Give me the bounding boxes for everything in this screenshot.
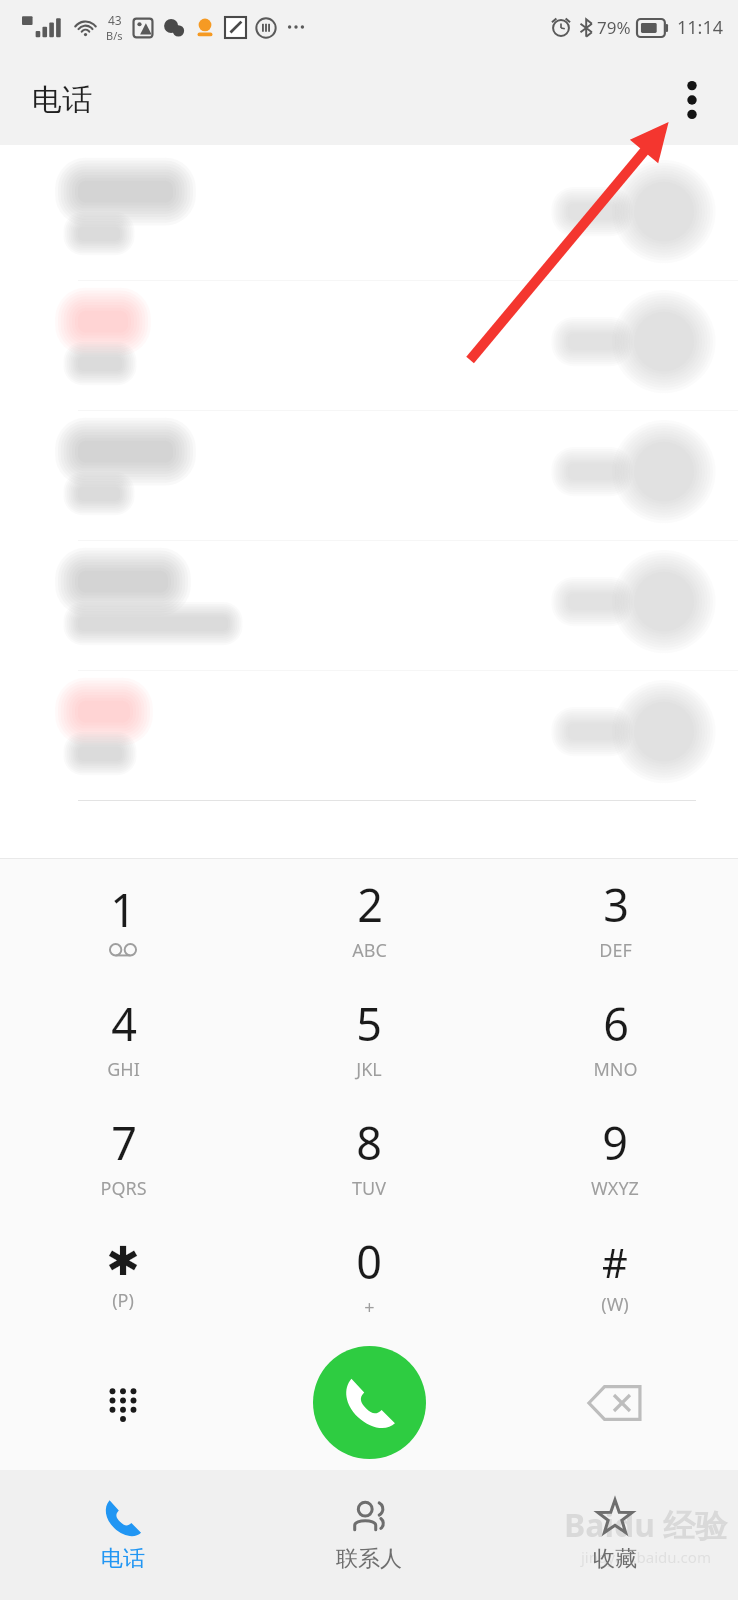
button[interactable]: 9 <box>492 1097 738 1216</box>
button[interactable] <box>0 281 738 410</box>
button[interactable]: 2 <box>246 859 492 978</box>
button[interactable]: # <box>492 1216 738 1335</box>
staticText: 4 <box>111 993 137 1054</box>
staticText: GHI <box>107 1057 140 1082</box>
staticText: 8 <box>356 1112 382 1173</box>
staticText: 0 <box>356 1231 382 1292</box>
staticText: Baidu 经验 <box>564 1503 728 1547</box>
staticText: JKL <box>356 1057 382 1082</box>
staticText: ABC <box>352 938 387 963</box>
staticText: ✱ <box>106 1238 140 1285</box>
button[interactable]: 1 <box>0 859 246 978</box>
staticText: 9 <box>602 1112 628 1173</box>
button[interactable]: 8 <box>246 1097 492 1216</box>
staticText: 11:14 <box>677 15 724 40</box>
staticText: 79% <box>597 16 631 39</box>
staticText: 6 <box>603 993 629 1054</box>
button[interactable]: 3 <box>492 859 738 978</box>
staticText: (W) <box>601 1292 629 1317</box>
staticText: (P) <box>112 1288 134 1313</box>
staticText: 2 <box>357 874 383 935</box>
button[interactable] <box>0 411 738 540</box>
button[interactable] <box>0 671 738 800</box>
staticText: 1 <box>110 879 136 940</box>
staticText: B/s <box>106 28 123 43</box>
staticText: + <box>364 1295 375 1320</box>
button[interactable]: Show keypad <box>0 1335 246 1470</box>
staticText: MNO <box>593 1057 638 1082</box>
staticText: 43 <box>108 12 122 28</box>
button[interactable] <box>0 151 738 280</box>
staticText: TUV <box>352 1176 386 1201</box>
staticText: 3 <box>603 874 629 935</box>
staticText: # <box>602 1235 628 1289</box>
button[interactable]: 收藏 <box>492 1470 738 1600</box>
staticText: 联系人 <box>336 1545 402 1573</box>
staticText: DEF <box>599 938 632 963</box>
button[interactable]: Call <box>313 1346 426 1459</box>
staticText: 电话 <box>101 1545 145 1573</box>
staticText: 电话 <box>32 81 92 119</box>
button[interactable]: ✱ <box>0 1216 246 1335</box>
button[interactable]: 电话 <box>0 1470 246 1600</box>
button[interactable]: 联系人 <box>246 1470 492 1600</box>
button[interactable]: 4 <box>0 978 246 1097</box>
staticText: 7 <box>111 1112 137 1173</box>
staticText: WXYZ <box>591 1176 639 1201</box>
button[interactable]: Backspace <box>492 1335 738 1470</box>
staticText: PQRS <box>100 1176 147 1201</box>
staticText: 收藏 <box>593 1545 637 1573</box>
button[interactable]: 5 <box>246 978 492 1097</box>
button[interactable]: 6 <box>492 978 738 1097</box>
button[interactable]: More options <box>660 68 724 132</box>
staticText: jingyan.baidu.com <box>581 1547 711 1567</box>
button[interactable] <box>0 541 738 670</box>
button[interactable]: 0 <box>246 1216 492 1335</box>
staticText: 5 <box>356 993 382 1054</box>
button[interactable]: 7 <box>0 1097 246 1216</box>
